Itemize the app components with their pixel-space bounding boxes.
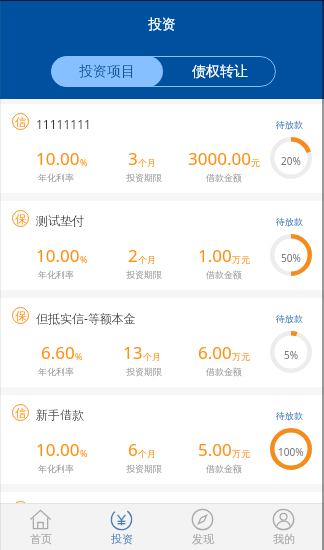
button[interactable]: 保 xyxy=(0,201,324,290)
button[interactable]: 投资 xyxy=(81,504,162,550)
staticText: 待放款 xyxy=(276,507,303,518)
staticText: 测试垫付 xyxy=(36,213,84,228)
staticText: 保 xyxy=(15,309,26,323)
staticText: 元 xyxy=(251,157,260,168)
staticText: 投资期限 xyxy=(126,172,162,183)
staticText: % xyxy=(80,447,88,459)
button[interactable]: 信 xyxy=(0,104,324,193)
staticText: 13 xyxy=(123,341,143,364)
staticText: % xyxy=(75,350,83,362)
staticText: 年化利率 xyxy=(38,463,74,474)
staticText: 3 xyxy=(128,147,138,170)
staticText: 5.00 xyxy=(198,438,232,461)
staticText: 10.00 xyxy=(36,147,80,170)
staticText: 9.00 xyxy=(41,535,75,550)
staticText: 借款金额 xyxy=(206,172,242,183)
staticText: 投资期限 xyxy=(126,366,162,377)
staticText: 10.00 xyxy=(36,438,80,461)
staticText: 30% xyxy=(281,542,301,550)
staticText: 投资项目 xyxy=(79,63,135,81)
staticText: 投资 xyxy=(148,16,176,34)
staticText: 20% xyxy=(281,154,301,168)
button[interactable]: 债权转让 xyxy=(163,56,276,87)
staticText: 新手借款 xyxy=(36,407,84,422)
staticText: 个月 xyxy=(143,351,161,362)
staticText: 借款金额 xyxy=(206,366,242,377)
staticText: 12 xyxy=(123,535,143,550)
staticText: % xyxy=(80,156,88,168)
staticText: 发现 xyxy=(192,532,214,546)
staticText: 待放款 xyxy=(276,410,303,421)
staticText: 6 xyxy=(128,438,138,461)
staticText: 万元 xyxy=(232,351,250,362)
staticText: 信 xyxy=(15,406,26,420)
staticText: 10.00 xyxy=(36,244,80,267)
staticText: 1.00 xyxy=(198,244,232,267)
staticText: 个月 xyxy=(138,157,156,168)
staticText: 个月 xyxy=(138,254,156,265)
staticText: 2 xyxy=(128,244,138,267)
staticText: 年化利率 xyxy=(38,366,74,377)
staticText: 我的 xyxy=(273,532,295,546)
staticText: 万元 xyxy=(232,448,250,459)
staticText: 6.00 xyxy=(198,341,232,364)
staticText: 投资期限 xyxy=(126,269,162,280)
staticText: 借款金额 xyxy=(206,269,242,280)
staticText: 首页 xyxy=(30,532,52,546)
staticText: 投资 xyxy=(111,532,133,546)
staticText: 年化利率 xyxy=(38,172,74,183)
staticText: 投资期限 xyxy=(126,463,162,474)
staticText: 保 xyxy=(15,212,26,226)
staticText: 11111111 xyxy=(36,116,91,132)
button[interactable]: 信 xyxy=(0,395,324,484)
staticText: 6.60 xyxy=(41,341,75,364)
staticText: 50% xyxy=(281,251,301,265)
staticText: 年化利率 xyxy=(38,269,74,280)
staticText: 待放款 xyxy=(276,216,303,227)
staticText: 信 xyxy=(15,115,26,129)
button[interactable]: 我的 xyxy=(243,504,324,550)
button[interactable]: 发现 xyxy=(162,504,243,550)
staticText: 借款金额 xyxy=(206,463,242,474)
button[interactable]: 投资项目 xyxy=(51,56,163,87)
staticText: 100% xyxy=(278,445,304,459)
staticText: 测试借款 xyxy=(36,504,84,519)
staticText: 待放款 xyxy=(276,119,303,130)
staticText: 5% xyxy=(284,348,299,362)
button[interactable]: 保 xyxy=(0,298,324,387)
button[interactable]: 信 xyxy=(0,492,324,550)
staticText: 但抵实信-等额本金 xyxy=(36,310,136,326)
staticText: 万元 xyxy=(232,254,250,265)
staticText: 2.00 xyxy=(198,535,232,550)
staticText: 信 xyxy=(15,503,26,517)
staticText: 个月 xyxy=(138,448,156,459)
staticText: % xyxy=(80,253,88,265)
staticText: 待放款 xyxy=(276,313,303,324)
staticText: 3000.00 xyxy=(188,147,251,170)
staticText: 债权转让 xyxy=(192,63,248,81)
button[interactable]: 首页 xyxy=(0,504,81,550)
